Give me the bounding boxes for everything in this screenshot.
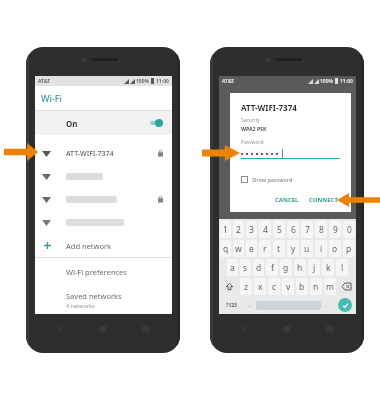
button[interactable]: c (268, 278, 280, 295)
button[interactable]: Show password (241, 176, 293, 183)
staticText: 11:00 (156, 78, 169, 85)
button[interactable] (35, 188, 172, 211)
button[interactable]: 8 (315, 221, 327, 238)
button[interactable]: d (253, 259, 264, 276)
staticText: w (235, 243, 242, 255)
staticText: d (256, 262, 262, 274)
button[interactable]: f (266, 259, 278, 276)
button[interactable]: CANCEL (273, 193, 301, 207)
button[interactable]: o (329, 240, 341, 257)
staticText: i (320, 243, 323, 255)
staticText: y (291, 243, 296, 255)
button[interactable]: 1 (220, 221, 231, 238)
staticText: g (283, 262, 289, 274)
staticText: l (341, 262, 344, 274)
staticText: 0 (347, 224, 352, 236)
button[interactable]: z (240, 278, 252, 295)
button[interactable]: u (301, 240, 313, 257)
staticText: 4 networks (66, 302, 95, 309)
button[interactable]: e (246, 240, 257, 257)
button[interactable]: 6 (287, 221, 299, 238)
staticText: m (326, 281, 334, 293)
other: Home (99, 325, 107, 333)
button[interactable]: t (273, 240, 285, 257)
button[interactable]: b (296, 278, 308, 295)
staticText: . (326, 301, 328, 309)
button[interactable]: a (227, 259, 238, 276)
button[interactable]: w (233, 240, 244, 257)
button[interactable]: Wi-Fi preferences (35, 258, 172, 285)
staticText: AT&T (38, 78, 51, 85)
button[interactable]: g (280, 259, 292, 276)
staticText: Saved networks (66, 291, 122, 301)
button[interactable]: Saved networks (35, 285, 172, 309)
staticText: 5 (277, 224, 282, 236)
staticText: 11:00 (340, 78, 353, 85)
staticText: Show password (252, 176, 293, 183)
button[interactable]: Add network (35, 234, 172, 257)
button[interactable]: l (336, 259, 348, 276)
button[interactable] (35, 211, 172, 234)
button[interactable]: q (220, 240, 231, 257)
staticText: Add network (66, 241, 112, 251)
button[interactable]: v (282, 278, 294, 295)
button[interactable]: x (254, 278, 266, 295)
button[interactable]: i (315, 240, 327, 257)
button[interactable]: 3 (246, 221, 257, 238)
staticText: 100% (320, 78, 334, 85)
button[interactable]: 7 (301, 221, 313, 238)
staticText: 4 (263, 224, 268, 236)
staticText: z (244, 281, 248, 293)
staticText: u (304, 243, 310, 255)
button[interactable]: 2 (233, 221, 244, 238)
button[interactable]: ATT-WIFI-7374 (35, 142, 172, 165)
button[interactable]: 4 (259, 221, 271, 238)
staticText: k (326, 262, 331, 274)
button[interactable]: Shift (219, 277, 239, 296)
staticText: c (272, 281, 277, 293)
staticText: 100% (136, 78, 150, 85)
other: Back (240, 325, 248, 333)
button[interactable]: h (294, 259, 306, 276)
staticText: h (297, 262, 303, 274)
button[interactable]: n (310, 278, 322, 295)
button[interactable]: Space (256, 296, 321, 314)
button[interactable]: r (259, 240, 271, 257)
staticText: q (223, 243, 229, 255)
button[interactable]: 5 (273, 221, 285, 238)
button[interactable]: s (240, 259, 251, 276)
staticText: ?123 (226, 302, 237, 309)
staticText: 1 (223, 224, 228, 236)
button[interactable]: , (243, 296, 256, 314)
staticText: AT&T (222, 78, 235, 85)
button[interactable]: p (343, 240, 355, 257)
other: Recents (142, 325, 150, 333)
button[interactable]: CONNECT (307, 193, 340, 207)
staticText: ATT-WIFI-7374 (241, 102, 297, 113)
other: Home (283, 325, 291, 333)
staticText: 8 (319, 224, 324, 236)
button[interactable]: j (308, 259, 320, 276)
staticText: f (271, 262, 274, 274)
staticText: ATT-WIFI-7374 (66, 149, 114, 159)
button[interactable]: ?123 (219, 296, 243, 314)
button[interactable] (35, 165, 172, 188)
staticText: o (332, 243, 338, 255)
staticText: CONNECT (309, 196, 338, 204)
other: Back (56, 325, 64, 333)
button[interactable]: k (322, 259, 334, 276)
button[interactable]: 0 (343, 221, 355, 238)
button[interactable]: m (324, 278, 336, 295)
staticText: j (313, 262, 316, 274)
staticText: On (66, 118, 78, 129)
button[interactable]: 9 (329, 221, 341, 238)
staticText: a (230, 262, 235, 274)
staticText: CANCEL (275, 196, 299, 204)
button[interactable]: Backspace (337, 277, 356, 296)
staticText: 3 (249, 224, 254, 236)
button[interactable]: y (287, 240, 299, 257)
button[interactable]: On (35, 111, 172, 135)
button[interactable]: Enter (338, 298, 352, 312)
staticText: , (249, 301, 251, 309)
